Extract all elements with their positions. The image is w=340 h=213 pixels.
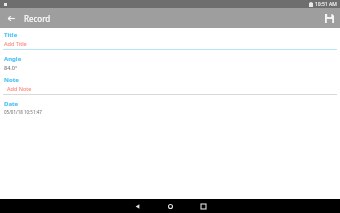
staticText: Date bbox=[4, 100, 19, 108]
staticText: Title bbox=[4, 31, 18, 39]
button[interactable]: Add Title bbox=[3, 40, 337, 50]
staticText: Add Title bbox=[4, 40, 27, 47]
button[interactable]: Recent apps bbox=[187, 201, 220, 212]
button[interactable]: Back bbox=[0, 14, 22, 23]
staticText: Note bbox=[4, 76, 19, 84]
staticText: Angle bbox=[4, 55, 22, 63]
button[interactable]: Back bbox=[121, 201, 154, 212]
button[interactable]: Add Note bbox=[3, 85, 337, 95]
button[interactable]: Home bbox=[154, 201, 187, 212]
staticText: 84.0° bbox=[4, 64, 18, 71]
button[interactable]: Save bbox=[319, 14, 340, 23]
staticText: 05/01/18 10:51:47 bbox=[4, 109, 42, 115]
staticText: Add Note bbox=[7, 85, 32, 92]
staticText: Record bbox=[24, 13, 51, 24]
staticText: 10:51 AM bbox=[315, 1, 337, 8]
